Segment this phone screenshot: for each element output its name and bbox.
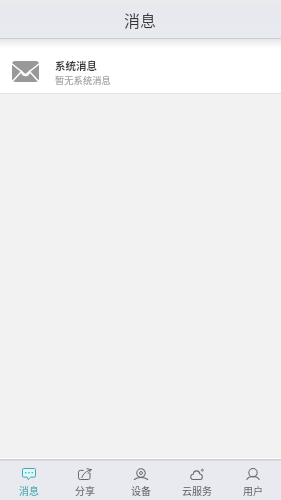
staticText: 用户 <box>243 483 263 496</box>
staticText: 云服务 <box>182 483 212 496</box>
staticText: 分享 <box>75 483 95 496</box>
button[interactable]: 分享 <box>57 468 113 496</box>
button[interactable]: 用户 <box>225 468 281 496</box>
button[interactable]: 云服务 <box>169 468 225 496</box>
staticText: 消息 <box>19 483 39 496</box>
staticText: 消息 <box>124 8 157 31</box>
button[interactable]: 设备 <box>113 468 169 496</box>
button[interactable]: 消息 <box>0 468 57 496</box>
button[interactable]: 系统消息 <box>0 39 281 94</box>
staticText: 系统消息 <box>55 58 97 73</box>
staticText: 设备 <box>131 483 151 496</box>
staticText: 暂无系统消息 <box>55 73 111 86</box>
